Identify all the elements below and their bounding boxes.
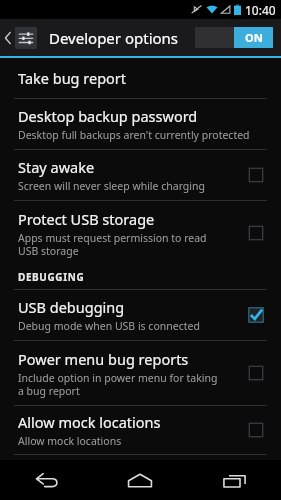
staticText: Screen will never sleep while charging bbox=[18, 179, 205, 193]
button[interactable]: Allow mock locations bbox=[0, 406, 281, 454]
button[interactable]: Power menu bug reports bbox=[0, 341, 281, 405]
button[interactable]: Take bug report bbox=[0, 58, 281, 98]
staticText: USB debugging bbox=[18, 297, 125, 317]
staticText: Allow mock locations bbox=[18, 434, 122, 448]
button[interactable]: Home bbox=[93, 460, 187, 500]
button[interactable]: Recent apps bbox=[187, 460, 281, 500]
staticText: ON bbox=[245, 30, 263, 45]
staticText: 10:40 bbox=[245, 2, 276, 18]
staticText: Allow mock locations bbox=[18, 412, 161, 432]
staticText: Desktop full backups aren't currently pr… bbox=[18, 128, 250, 142]
button[interactable]: Navigate up bbox=[0, 19, 41, 56]
button[interactable]: Back bbox=[0, 460, 93, 500]
staticText: Stay awake bbox=[18, 157, 95, 177]
staticText: Apps must request permission to read USB… bbox=[18, 231, 207, 258]
staticText: Protect USB storage bbox=[18, 209, 155, 229]
button[interactable]: ON bbox=[195, 27, 273, 48]
staticText: DEBUGGING bbox=[18, 270, 85, 284]
staticText: Power menu bug reports bbox=[18, 349, 189, 369]
staticText: Desktop backup password bbox=[18, 106, 198, 126]
button[interactable]: USB debugging bbox=[0, 290, 281, 340]
button[interactable]: Stay awake bbox=[0, 150, 281, 200]
staticText: Include option in power menu for taking … bbox=[18, 371, 218, 398]
staticText: Take bug report bbox=[18, 68, 127, 88]
staticText: Developer options bbox=[49, 28, 179, 48]
staticText: Debug mode when USB is connected bbox=[18, 319, 200, 333]
button[interactable]: Desktop backup password bbox=[0, 99, 281, 149]
button[interactable]: Protect USB storage bbox=[0, 201, 281, 265]
